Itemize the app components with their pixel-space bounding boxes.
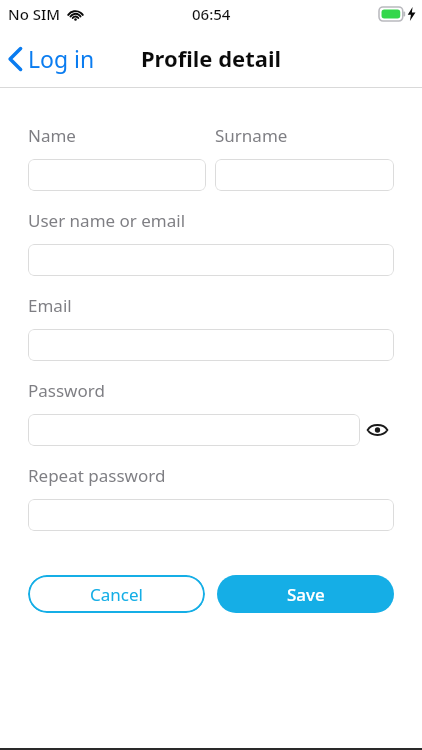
staticText: No SIM (8, 4, 61, 24)
staticText: 06:54 (192, 4, 231, 24)
staticText: Surname (215, 124, 288, 147)
button[interactable]: Log in (0, 39, 105, 78)
button[interactable]: Cancel (28, 575, 205, 613)
staticText: Save (287, 583, 325, 606)
button[interactable] (28, 414, 360, 446)
staticText: Log in (28, 43, 95, 74)
staticText: Cancel (90, 583, 143, 606)
staticText: Name (28, 124, 76, 147)
staticText: Password (28, 379, 105, 402)
staticText: Repeat password (28, 464, 166, 487)
staticText: User name or email (28, 209, 186, 232)
button[interactable] (215, 159, 394, 191)
button[interactable]: Save (217, 575, 394, 613)
button[interactable] (28, 499, 394, 531)
button[interactable] (28, 159, 206, 191)
button[interactable]: Show password (360, 414, 394, 446)
staticText: Email (28, 294, 72, 317)
staticText: Profile detail (0, 43, 422, 73)
button[interactable] (28, 329, 394, 361)
button[interactable] (28, 244, 394, 276)
